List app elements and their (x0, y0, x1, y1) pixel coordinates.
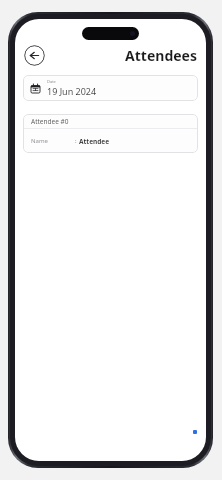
staticText: Attendee (79, 137, 110, 146)
staticText: : (75, 137, 79, 145)
button[interactable]: Date (23, 75, 198, 101)
staticText: Attendees (125, 46, 197, 65)
button[interactable]: Attendee #0 (23, 114, 198, 153)
button[interactable]: Back (24, 45, 45, 66)
staticText: 19 Jun 2024 (47, 85, 97, 97)
staticText: Date (47, 79, 56, 84)
staticText: Attendee #0 (31, 117, 69, 126)
staticText: Name (31, 137, 48, 145)
